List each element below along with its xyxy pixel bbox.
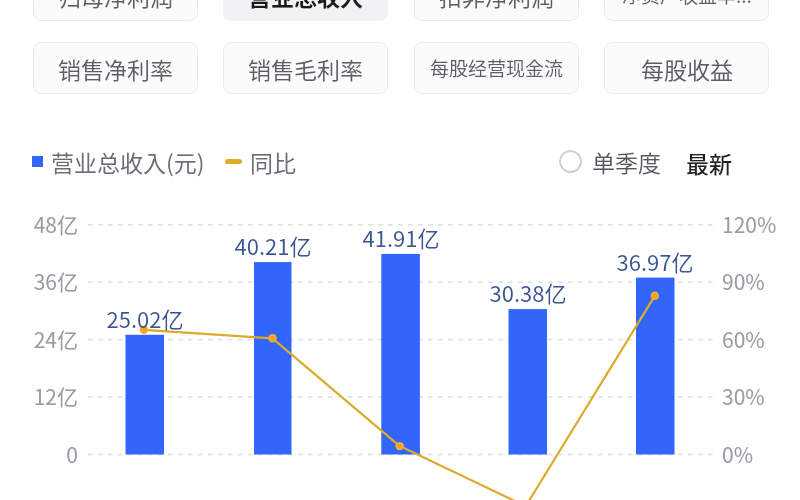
- staticText: 60%: [722, 324, 765, 354]
- button[interactable]: 营业总收入: [223, 0, 388, 21]
- staticText: 净资产收益率...: [622, 0, 752, 9]
- button[interactable]: 销售净利率: [33, 42, 198, 94]
- staticText: 销售净利率: [58, 52, 173, 85]
- button[interactable]: 销售毛利率: [223, 42, 388, 94]
- staticText: 30%: [722, 381, 765, 411]
- staticText: 12亿: [0, 381, 78, 411]
- staticText: 36亿: [0, 266, 78, 296]
- staticText: 30.38亿: [468, 276, 588, 308]
- staticText: 36.97亿: [595, 245, 715, 277]
- staticText: 120%: [722, 209, 777, 239]
- staticText: 每股经营现金流: [430, 54, 564, 82]
- staticText: 41.91亿: [341, 221, 461, 253]
- staticText: 单季度: [592, 145, 661, 178]
- button[interactable]: 扣非净利润: [414, 0, 579, 21]
- staticText: 营业总收入(元): [51, 145, 205, 178]
- staticText: 48亿: [0, 209, 78, 239]
- staticText: 营业总收入: [248, 0, 363, 12]
- staticText: 销售毛利率: [248, 52, 363, 85]
- button[interactable]: 营业总收入(元): [32, 145, 296, 178]
- staticText: 0%: [722, 439, 753, 469]
- staticText: 90%: [722, 266, 765, 296]
- staticText: 每股收益: [641, 52, 733, 85]
- staticText: 24亿: [0, 324, 78, 354]
- staticText: 40.21亿: [213, 229, 333, 261]
- button[interactable]: 归母净利润: [33, 0, 198, 21]
- button[interactable]: 每股经营现金流: [414, 42, 579, 94]
- staticText: 归母净利润: [58, 0, 173, 12]
- staticText: 同比: [250, 145, 296, 178]
- button[interactable]: 最新: [686, 146, 732, 179]
- button[interactable]: 净资产收益率...: [604, 0, 769, 21]
- staticText: 25.02亿: [85, 302, 205, 334]
- staticText: 0: [0, 439, 78, 469]
- staticText: 扣非净利润: [439, 0, 554, 12]
- button[interactable]: 每股收益: [604, 42, 769, 94]
- button[interactable]: 单季度: [559, 145, 661, 178]
